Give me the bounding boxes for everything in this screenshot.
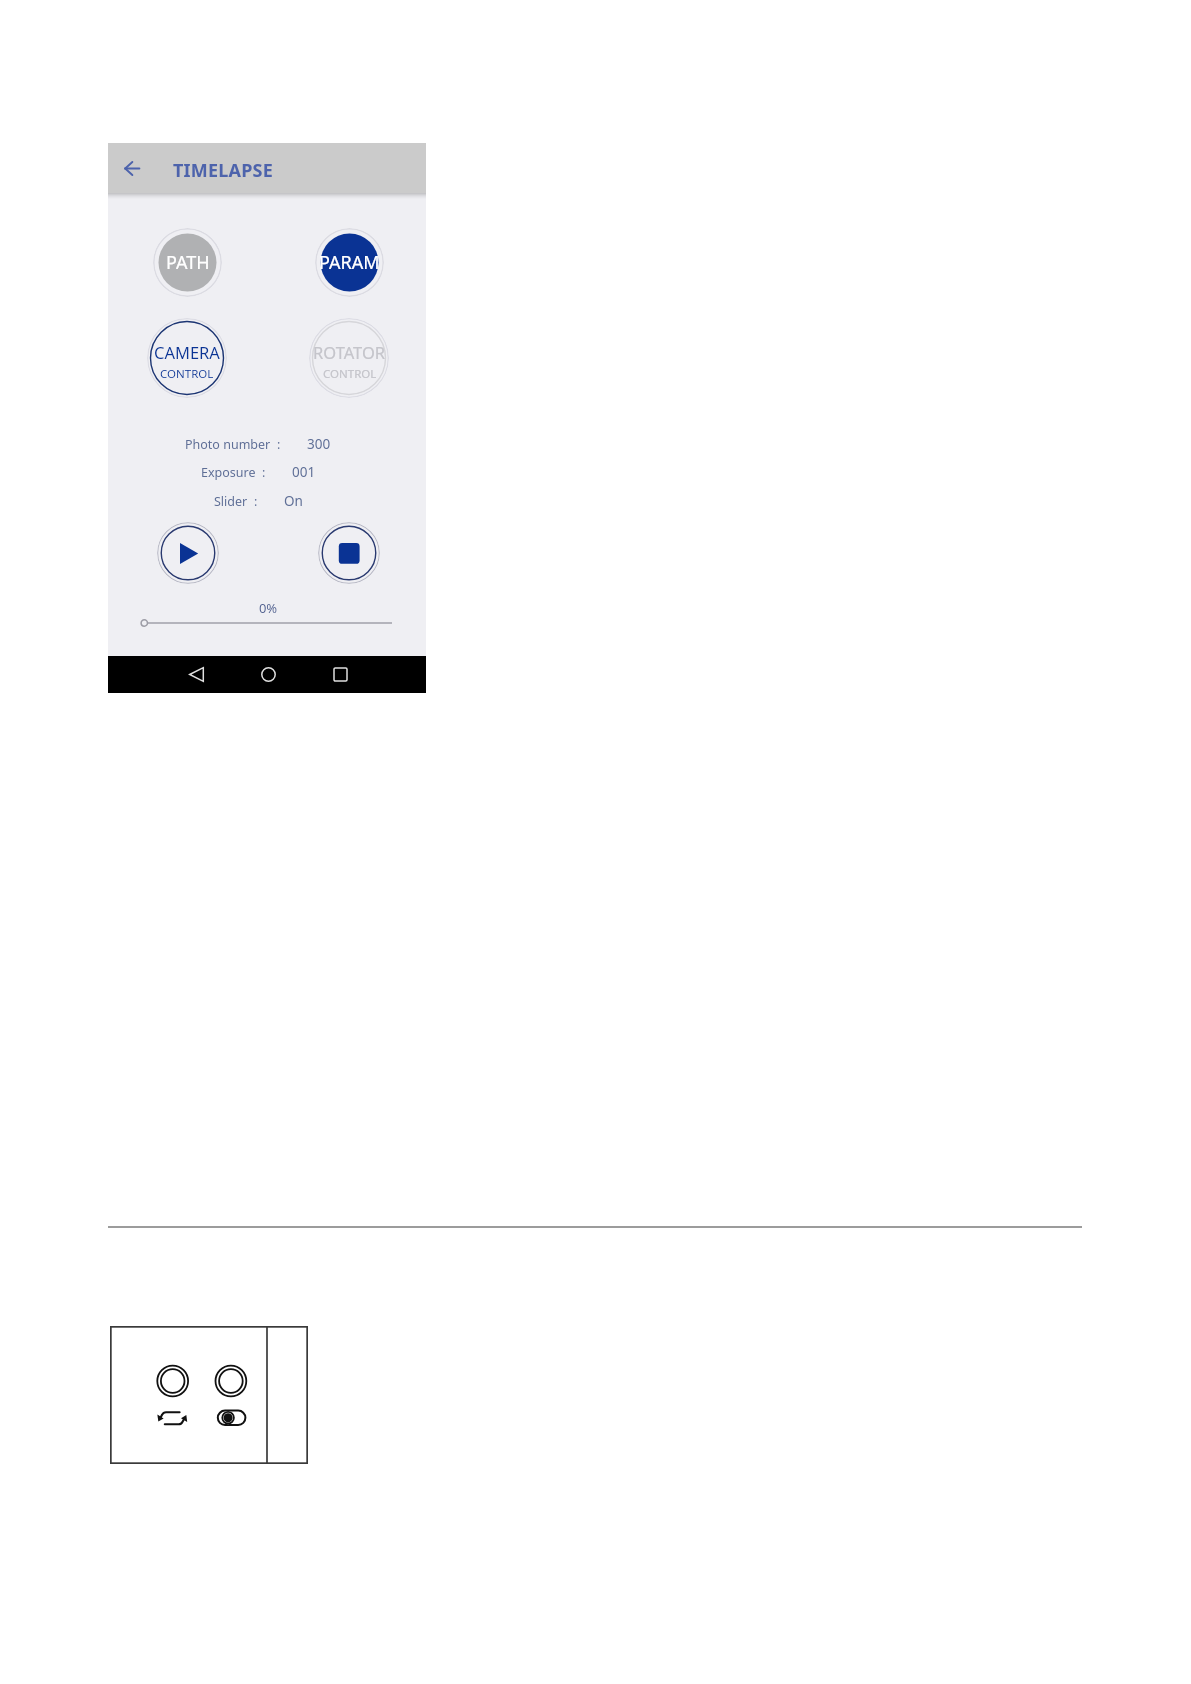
button[interactable]: CAMERA [147, 318, 227, 398]
staticText: 0% [109, 599, 427, 617]
staticText: On [284, 492, 303, 510]
staticText: : [254, 493, 258, 510]
staticText: CAMERA [154, 341, 220, 363]
button[interactable]: ROTATOR [309, 318, 389, 398]
staticText: Photo number [185, 436, 271, 453]
staticText: PARAM [319, 250, 380, 275]
button[interactable]: Home [247, 656, 289, 693]
staticText: CONTROL [323, 366, 377, 382]
staticText: Exposure [201, 464, 256, 481]
button[interactable]: Stop [318, 522, 380, 584]
staticText: Slider [214, 493, 248, 510]
staticText: 001 [292, 463, 316, 481]
button[interactable]: Recents [319, 656, 361, 693]
staticText: ROTATOR [313, 341, 386, 363]
staticText: : [277, 436, 281, 453]
button[interactable]: Back [114, 151, 150, 186]
staticText: 300 [307, 435, 331, 453]
staticText: PATH [166, 250, 210, 275]
button[interactable]: Progress [136, 615, 400, 631]
staticText: CONTROL [160, 366, 214, 382]
button[interactable]: Back [175, 656, 217, 693]
staticText: : [262, 464, 266, 481]
button[interactable]: PARAM [315, 228, 384, 297]
button[interactable]: PATH [153, 228, 222, 297]
button[interactable]: Play [157, 522, 219, 584]
staticText: TIMELAPSE [173, 158, 273, 183]
